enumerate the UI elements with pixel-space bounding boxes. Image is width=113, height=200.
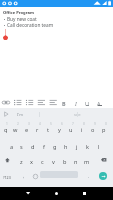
- staticText: 3: [28, 122, 30, 126]
- button[interactable]: b: [59, 154, 70, 170]
- staticText: r: [36, 126, 39, 134]
- button[interactable]: a: [6, 139, 17, 155]
- button[interactable]: t: [43, 122, 54, 138]
- button[interactable]: i: [76, 122, 87, 138]
- button[interactable]: u: [65, 122, 76, 138]
- button[interactable]: I: [71, 98, 81, 108]
- button[interactable]: ?123: [1, 170, 13, 184]
- button[interactable]: s: [16, 139, 27, 155]
- button[interactable]: Shift: [2, 154, 13, 165]
- button[interactable]: l: [93, 139, 104, 155]
- staticText: 0: [105, 122, 107, 126]
- staticText: c: [41, 158, 44, 166]
- staticText: h: [64, 143, 68, 151]
- button[interactable]: k: [82, 139, 93, 155]
- staticText: z: [20, 158, 23, 166]
- button[interactable]: n: [70, 154, 81, 170]
- staticText: I: [75, 100, 77, 107]
- staticText: m: [84, 158, 90, 166]
- staticText: ?123: [3, 175, 11, 180]
- button[interactable]: .: [84, 171, 94, 181]
- button[interactable]: x: [26, 154, 37, 170]
- staticText: 9: [94, 122, 96, 126]
- staticText: 8: [83, 122, 85, 126]
- button[interactable]: Home: [48, 187, 64, 200]
- staticText: l: [98, 143, 100, 151]
- button[interactable]: Emoji: [30, 171, 40, 181]
- staticText: see: [74, 112, 81, 117]
- button[interactable]: z: [16, 154, 27, 170]
- button[interactable]: f: [38, 139, 49, 155]
- staticText: t: [47, 126, 50, 134]
- button[interactable]: h: [60, 139, 71, 155]
- staticText: 2: [17, 122, 19, 126]
- staticText: w: [13, 126, 18, 134]
- staticText: j: [76, 143, 78, 151]
- staticText: s: [20, 143, 23, 151]
- staticText: b: [63, 158, 67, 166]
- staticText: p: [102, 126, 106, 134]
- staticText: i: [81, 126, 83, 134]
- staticText: e: [25, 126, 29, 134]
- button[interactable]: j: [71, 139, 82, 155]
- button[interactable]: Backspace: [98, 154, 109, 165]
- staticText: Buy new coat: [7, 16, 37, 22]
- staticText: Office Program: [3, 10, 34, 16]
- staticText: 6: [61, 122, 63, 126]
- button[interactable]: m: [81, 154, 92, 170]
- staticText: 7: [72, 122, 74, 126]
- button[interactable]: r: [32, 122, 43, 138]
- staticText: 1: [6, 122, 8, 126]
- staticText: A: [97, 100, 101, 107]
- button[interactable]: e: [21, 122, 32, 138]
- button[interactable]: c: [37, 154, 48, 170]
- button[interactable]: A: [94, 98, 104, 108]
- button[interactable]: Back: [20, 187, 36, 200]
- button[interactable]: d: [27, 139, 38, 155]
- staticText: q: [4, 126, 8, 134]
- button[interactable]: q: [0, 122, 11, 138]
- button[interactable]: ,: [19, 171, 29, 181]
- staticText: B: [62, 100, 66, 107]
- button[interactable]: g: [49, 139, 60, 155]
- staticText: v: [52, 158, 55, 166]
- button[interactable]: U: [82, 98, 92, 108]
- staticText: I'm: [17, 112, 23, 117]
- staticText: Call decoration team: [7, 22, 54, 28]
- staticText: y: [58, 126, 61, 134]
- staticText: 4: [39, 122, 41, 126]
- staticText: U: [85, 100, 89, 107]
- button[interactable]: v: [48, 154, 59, 170]
- button[interactable]: o: [87, 122, 98, 138]
- staticText: a: [10, 143, 14, 151]
- staticText: o: [91, 126, 95, 134]
- staticText: .: [88, 173, 90, 179]
- staticText: ,: [23, 173, 25, 179]
- button[interactable]: p: [98, 122, 109, 138]
- staticText: x: [30, 158, 33, 166]
- staticText: u: [69, 126, 73, 134]
- button[interactable]: w: [10, 122, 21, 138]
- staticText: 5: [50, 122, 52, 126]
- staticText: n: [74, 158, 78, 166]
- staticText: g: [53, 143, 57, 151]
- button[interactable]: Enter: [99, 172, 107, 180]
- button[interactable]: Recent apps: [76, 187, 92, 200]
- button[interactable]: B: [59, 98, 69, 108]
- staticText: f: [43, 143, 45, 151]
- staticText: d: [31, 143, 35, 151]
- staticText: k: [86, 143, 89, 151]
- button[interactable]: y: [54, 122, 65, 138]
